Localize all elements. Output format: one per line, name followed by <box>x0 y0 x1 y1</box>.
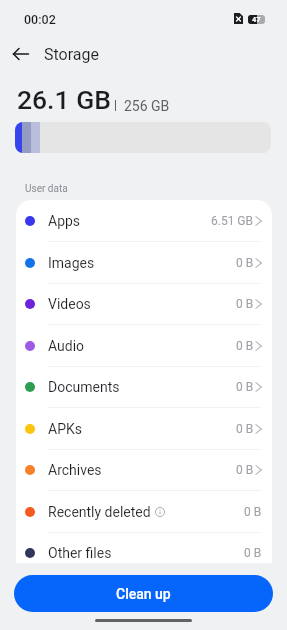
button[interactable]: Videos <box>16 283 272 325</box>
staticText: 0 B <box>236 256 254 270</box>
staticText: User data <box>25 183 68 195</box>
staticText: Videos <box>48 296 91 312</box>
staticText: 6.51 GB <box>211 214 254 228</box>
staticText: 26.1 GB <box>17 84 111 115</box>
button[interactable]: Recently deleted <box>16 491 272 533</box>
staticText: 0 B <box>236 380 254 394</box>
button[interactable]: Clean up <box>14 575 273 612</box>
staticText: Audio <box>48 338 85 354</box>
staticText: APKs <box>48 421 82 437</box>
staticText: Storage <box>44 45 99 64</box>
staticText: Other files <box>48 545 112 561</box>
staticText: Clean up <box>116 586 171 602</box>
staticText: 0 B <box>244 546 262 560</box>
staticText: 256 GB <box>124 98 170 114</box>
button[interactable]: Back <box>6 39 36 69</box>
staticText: Recently deleted <box>48 504 151 520</box>
staticText: 47 <box>252 15 261 24</box>
staticText: 0 B <box>236 339 254 353</box>
staticText: 0 B <box>236 463 254 477</box>
button[interactable]: Apps <box>16 200 272 242</box>
button[interactable]: Other files <box>16 532 272 563</box>
staticText: 00:02 <box>24 12 56 27</box>
staticText: 0 B <box>236 297 254 311</box>
button[interactable]: Documents <box>16 366 272 408</box>
button[interactable]: Images <box>16 242 272 284</box>
staticText: 0 B <box>244 505 262 519</box>
staticText: 0 B <box>236 422 254 436</box>
staticText: Documents <box>48 379 120 395</box>
button[interactable]: Archives <box>16 449 272 491</box>
button[interactable]: Audio <box>16 325 272 367</box>
staticText: Archives <box>48 462 102 478</box>
button[interactable]: APKs <box>16 408 272 450</box>
staticText: Images <box>48 255 95 271</box>
staticText: Apps <box>48 213 81 229</box>
